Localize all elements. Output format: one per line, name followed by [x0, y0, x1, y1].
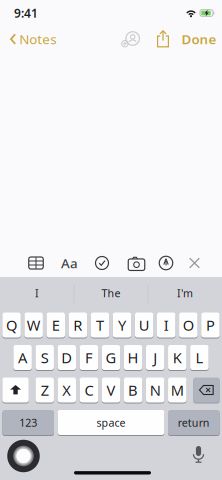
staticText: E [52, 315, 60, 335]
staticText: M [171, 380, 184, 400]
button[interactable]: B [124, 377, 142, 403]
staticText: D [61, 348, 72, 367]
button[interactable]: X [58, 377, 76, 403]
button[interactable]: space [58, 410, 164, 436]
button[interactable]: S [35, 345, 54, 371]
button[interactable]: G [102, 345, 120, 371]
button[interactable]: E [46, 312, 65, 338]
staticText: Notes [19, 30, 56, 48]
staticText: Aa [61, 254, 78, 272]
staticText: H [128, 348, 139, 367]
staticText: B [128, 380, 138, 400]
staticText: X [62, 380, 71, 400]
staticText: Done [181, 30, 216, 48]
staticText: F [85, 348, 93, 367]
button[interactable]: R [69, 312, 87, 338]
staticText: The [101, 286, 120, 300]
button[interactable]: I'm [150, 281, 220, 305]
staticText: P [206, 315, 215, 335]
button[interactable]: Q [2, 312, 21, 338]
staticText: C [84, 380, 93, 400]
button[interactable]: Insert table [27, 255, 45, 271]
staticText: return [178, 415, 210, 430]
button[interactable]: Insert photo [127, 255, 146, 271]
button[interactable]: D [58, 345, 76, 371]
staticText: space [96, 415, 125, 430]
staticText: Y [118, 315, 126, 335]
button[interactable]: F [80, 345, 98, 371]
button[interactable]: Checklist [94, 255, 110, 271]
staticText: T [96, 315, 104, 335]
staticText: I [164, 315, 169, 335]
button[interactable]: H [124, 345, 142, 371]
staticText: U [139, 315, 150, 335]
button[interactable]: W [24, 312, 43, 338]
staticText: N [150, 380, 161, 400]
button[interactable]: return [168, 410, 220, 436]
staticText: 9:41 [14, 5, 38, 21]
button[interactable]: C [80, 377, 98, 403]
staticText: Z [41, 380, 49, 400]
button[interactable]: Dismiss keyboard [187, 256, 201, 270]
staticText: O [183, 315, 194, 335]
staticText: R [73, 315, 82, 335]
staticText: 123 [19, 415, 37, 430]
staticText: K [173, 348, 182, 367]
button[interactable]: M [168, 377, 187, 403]
button[interactable]: I [2, 281, 72, 305]
button[interactable]: A [13, 345, 32, 371]
button[interactable]: N [146, 377, 164, 403]
button[interactable]: T [91, 312, 109, 338]
button[interactable]: Delete [193, 377, 220, 403]
button[interactable]: Share [155, 30, 171, 48]
button[interactable]: 123 [2, 410, 54, 436]
button[interactable]: Z [35, 377, 54, 403]
staticText: L [195, 348, 203, 367]
staticText: J [153, 348, 157, 367]
button[interactable]: L [190, 345, 209, 371]
button[interactable]: Back [3, 29, 63, 49]
button[interactable]: The [76, 281, 146, 305]
button[interactable]: Y [113, 312, 131, 338]
button[interactable]: O [179, 312, 198, 338]
button[interactable]: Format [60, 255, 78, 271]
staticText: A [18, 348, 27, 367]
staticText: W [27, 315, 41, 335]
button[interactable]: U [135, 312, 153, 338]
staticText: S [41, 348, 49, 367]
button[interactable]: K [168, 345, 187, 371]
button[interactable]: P [201, 312, 220, 338]
button[interactable]: J [146, 345, 164, 371]
button[interactable]: Done [179, 30, 219, 48]
button[interactable]: I [157, 312, 175, 338]
button[interactable]: Markup [158, 255, 174, 271]
button[interactable]: Add people [119, 30, 140, 48]
button[interactable]: V [102, 377, 120, 403]
staticText: I'm [177, 286, 193, 300]
staticText: G [105, 348, 116, 367]
button[interactable]: Shift [2, 377, 29, 403]
button[interactable]: Dictate [192, 445, 204, 463]
staticText: I [35, 286, 39, 300]
staticText: V [106, 380, 115, 400]
staticText: Q [6, 315, 17, 335]
button[interactable]: Next keyboard [7, 440, 39, 472]
